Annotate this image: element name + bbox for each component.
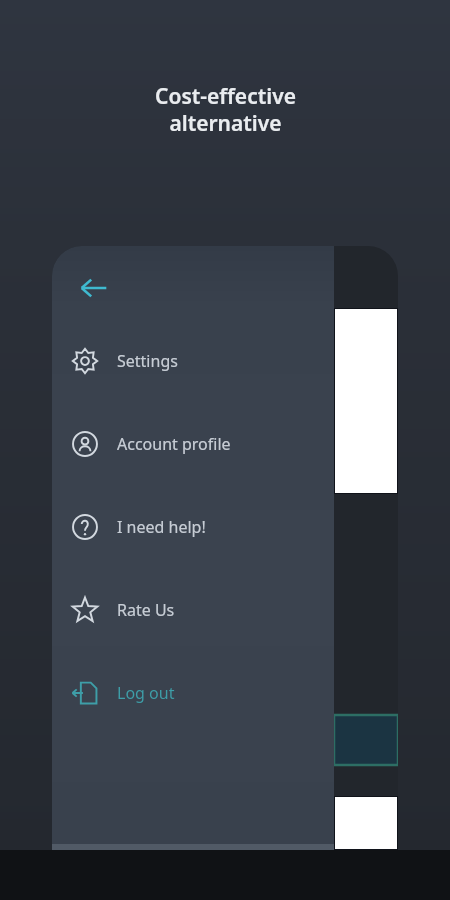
- staticText: Log out: [117, 682, 175, 704]
- staticText: Rate Us: [117, 599, 175, 621]
- staticText: Cost-effective alternative: [155, 82, 296, 137]
- button[interactable]: Back: [66, 260, 122, 316]
- staticText: Settings: [117, 350, 178, 372]
- button[interactable]: I need help!: [52, 485, 334, 568]
- button[interactable]: Rate Us: [52, 568, 334, 651]
- staticText: I need help!: [117, 516, 206, 538]
- button[interactable]: Log out: [52, 651, 334, 734]
- button[interactable]: Account profile: [52, 402, 334, 485]
- staticText: Account profile: [117, 433, 231, 455]
- button[interactable]: Settings: [52, 319, 334, 402]
